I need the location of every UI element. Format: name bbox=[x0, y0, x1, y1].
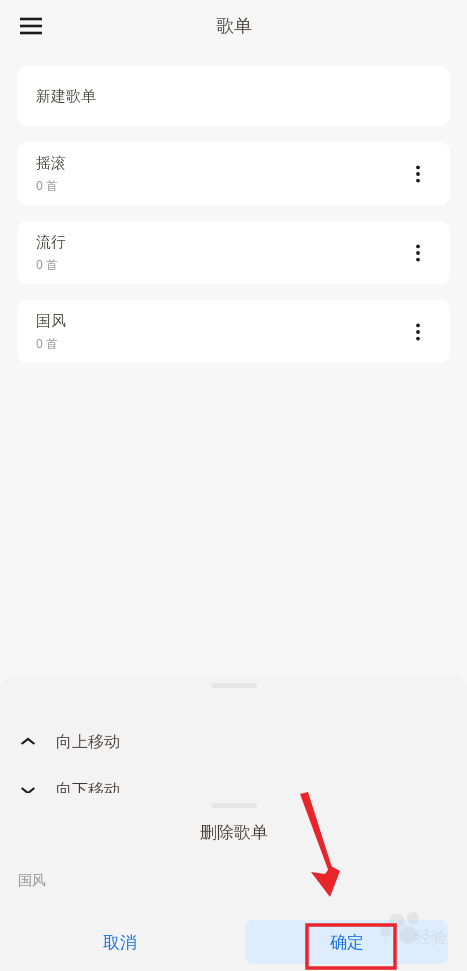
button[interactable]: More options bbox=[403, 159, 433, 189]
staticText: 向上移动 bbox=[56, 732, 120, 752]
staticText: 删除歌单 bbox=[200, 822, 268, 843]
button[interactable]: More options bbox=[403, 317, 433, 347]
button[interactable]: 流行 bbox=[17, 221, 450, 284]
button[interactable]: 新建歌单 bbox=[17, 66, 450, 126]
staticText: 确定 bbox=[330, 932, 364, 953]
staticText: 0 首 bbox=[36, 256, 58, 272]
staticText: 摇滚 bbox=[36, 154, 66, 173]
staticText: 歌单 bbox=[216, 15, 252, 38]
button[interactable]: 取消 bbox=[55, 920, 185, 964]
staticText: 0 首 bbox=[36, 177, 58, 193]
button[interactable]: 向下移动 bbox=[0, 768, 467, 812]
button[interactable]: 国风 bbox=[17, 300, 450, 363]
staticText: 新建歌单 bbox=[36, 87, 96, 106]
button[interactable]: More options bbox=[403, 238, 433, 268]
staticText: 流行 bbox=[36, 233, 66, 252]
staticText: 向下移动 bbox=[56, 780, 120, 800]
staticText: 取消 bbox=[103, 932, 137, 953]
staticText: 经验 bbox=[415, 928, 447, 948]
button[interactable]: 摇滚 bbox=[17, 142, 450, 205]
staticText: 国风 bbox=[18, 872, 46, 890]
button[interactable]: 确定 bbox=[245, 920, 448, 964]
button[interactable]: Menu bbox=[12, 10, 50, 48]
staticText: 国风 bbox=[36, 312, 66, 331]
button[interactable]: 向上移动 bbox=[0, 720, 467, 764]
staticText: 0 首 bbox=[36, 335, 58, 351]
